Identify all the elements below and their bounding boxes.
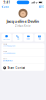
staticText: Jacqueline Devlin — [6, 19, 39, 24]
staticText: work — [3, 58, 7, 60]
staticText: mobile — [3, 43, 7, 45]
button[interactable]: call — [12, 34, 23, 42]
staticText: home — [3, 51, 7, 52]
button[interactable]: work — [1, 58, 44, 62]
staticText: Zirkus Knie — [15, 24, 31, 28]
button[interactable]: Share Contact — [1, 65, 44, 71]
staticText: mail — [38, 38, 40, 40]
button[interactable]: mail — [34, 34, 44, 42]
staticText: jdevlin@knie.ch — [3, 60, 13, 61]
button[interactable]: Edit — [39, 4, 46, 9]
button[interactable]: Lists — [0, 4, 9, 9]
staticText: +41 44 268 44 44 — [3, 52, 15, 54]
button[interactable]: message — [1, 34, 12, 42]
staticText: call — [16, 38, 18, 40]
staticText: video — [26, 38, 30, 40]
staticText: Lists — [3, 5, 8, 8]
staticText: Edit — [39, 5, 44, 8]
staticText: Share Contact — [7, 66, 25, 70]
button[interactable]: video — [23, 34, 33, 42]
staticText: 9:41 — [3, 1, 10, 4]
button[interactable]: mobile — [1, 43, 44, 47]
button[interactable]: home — [1, 50, 44, 54]
staticText: +41 79 555 21 84 — [3, 45, 15, 47]
staticText: message — [3, 38, 10, 40]
